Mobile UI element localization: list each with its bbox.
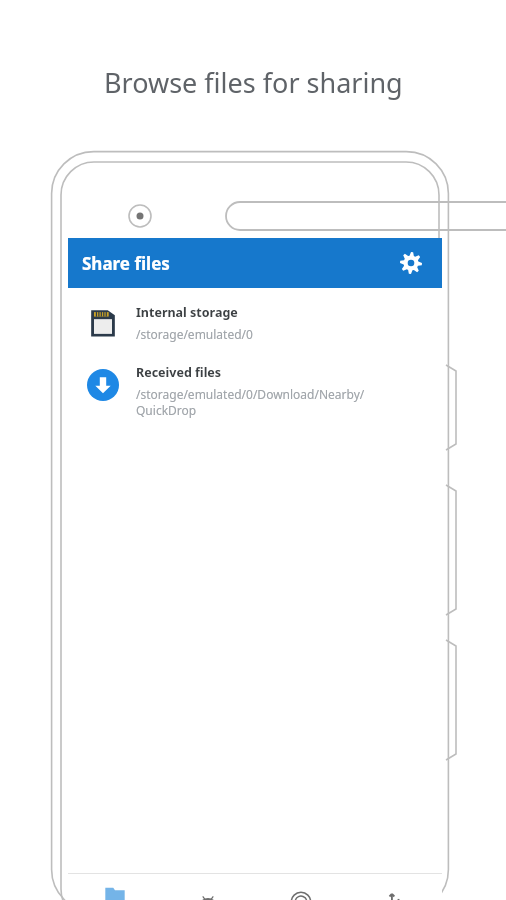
staticText: Internal storage bbox=[136, 304, 238, 321]
button[interactable]: Settings bbox=[394, 246, 428, 280]
button[interactable]: Android devices bbox=[161, 874, 254, 900]
staticText: Browse files for sharing bbox=[104, 64, 403, 101]
staticText: Received files bbox=[136, 364, 222, 381]
button[interactable]: Nearby bbox=[254, 874, 348, 900]
button[interactable]: Internal storage bbox=[68, 298, 442, 348]
button[interactable]: Received files bbox=[68, 360, 442, 424]
button[interactable]: Transfers bbox=[348, 874, 442, 900]
button[interactable]: Share files bbox=[68, 874, 161, 900]
staticText: /storage/emulated/0 bbox=[136, 326, 253, 342]
staticText: /storage/emulated/0/Download/Nearby/ Qui… bbox=[136, 386, 365, 418]
button[interactable]: Share files bbox=[68, 238, 442, 288]
staticText: Share files bbox=[82, 252, 170, 275]
